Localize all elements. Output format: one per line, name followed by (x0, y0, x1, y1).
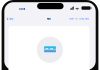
button[interactable]: Show All Sleep Data (66, 17, 89, 20)
staticText: Sleep (9, 18, 13, 20)
staticText: Show All Sleep Data (69, 18, 89, 20)
button[interactable]: Sleep (7, 17, 23, 21)
staticText: Naps (47, 18, 51, 20)
staticText: 09:41 (19, 8, 25, 11)
